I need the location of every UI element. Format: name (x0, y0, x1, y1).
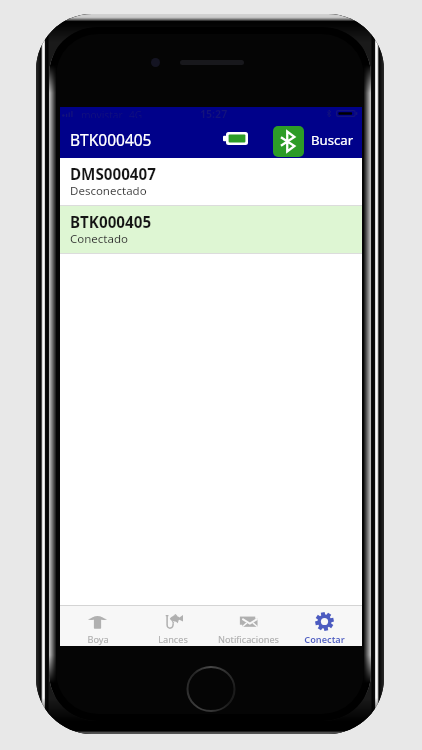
button[interactable]: Lances (135, 606, 210, 646)
button[interactable]: Bluetooth (273, 126, 304, 157)
staticText: BTK000405 (70, 129, 152, 150)
staticText: Boya (87, 633, 109, 646)
other: Home (186, 665, 236, 713)
staticText: Desconectado (70, 183, 147, 199)
button[interactable]: DMS000407 (60, 158, 362, 205)
staticText: Notificaciones (218, 633, 279, 646)
staticText: Conectado (70, 231, 128, 247)
staticText: BTK000405 (70, 212, 152, 233)
button[interactable]: Buscar (307, 127, 358, 153)
button[interactable]: Boya (60, 606, 135, 646)
staticText: 15:27 (200, 107, 228, 118)
button[interactable]: Notificaciones (210, 606, 286, 646)
staticText: Lances (158, 633, 188, 646)
staticText: DMS000407 (70, 164, 156, 185)
button[interactable]: BTK000405 (60, 206, 362, 253)
staticText: movistar (81, 108, 123, 119)
staticText: Buscar (311, 131, 354, 149)
staticText: 4G (129, 108, 143, 119)
button[interactable]: Conectar (286, 606, 362, 646)
staticText: Conectar (304, 633, 345, 646)
